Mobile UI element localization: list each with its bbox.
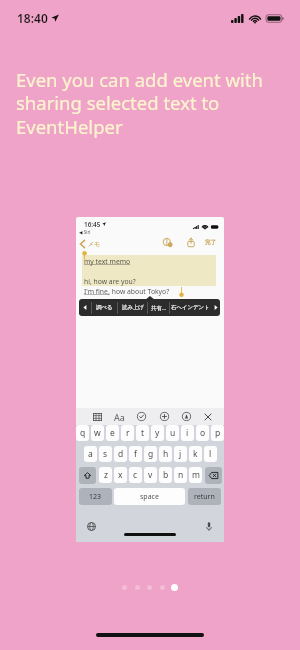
- button[interactable]: 右へインデント: [170, 299, 211, 316]
- button[interactable]: Text format: [113, 409, 125, 424]
- button[interactable]: k: [189, 446, 202, 462]
- staticText: r: [126, 427, 130, 439]
- button[interactable]: Insert table: [91, 409, 103, 424]
- button[interactable]: n: [174, 467, 187, 483]
- staticText: h: [163, 448, 169, 460]
- button[interactable]: 共有...: [148, 299, 169, 316]
- button[interactable]: Page 4 of 5: [160, 585, 165, 590]
- staticText: p: [215, 427, 221, 439]
- staticText: 共有...: [151, 304, 167, 311]
- button[interactable]: s: [99, 446, 112, 462]
- staticText: a: [88, 448, 93, 460]
- staticText: b: [163, 469, 169, 481]
- staticText: u: [170, 427, 176, 439]
- staticText: 右へインデント: [171, 304, 210, 311]
- button[interactable]: h: [159, 446, 172, 462]
- staticText: c: [133, 469, 138, 481]
- staticText: z: [104, 469, 108, 481]
- button[interactable]: j: [174, 446, 187, 462]
- staticText: 16:45: [84, 220, 101, 229]
- staticText: 調べる: [96, 304, 113, 311]
- staticText: my text memo: [84, 257, 131, 266]
- button[interactable]: o: [196, 425, 209, 441]
- staticText: how about Tokyo?: [110, 287, 170, 296]
- button[interactable]: v: [144, 467, 157, 483]
- button[interactable]: r: [121, 425, 134, 441]
- staticText: Aa: [114, 411, 125, 423]
- button[interactable]: i: [181, 425, 194, 441]
- button[interactable]: 調べる: [92, 299, 117, 316]
- button[interactable]: Page 5 of 5: [171, 584, 178, 591]
- staticText: m: [192, 469, 200, 481]
- button[interactable]: Page 1 of 5: [122, 585, 127, 590]
- staticText: k: [193, 448, 198, 460]
- staticText: i: [186, 427, 189, 439]
- staticText: 完了: [205, 239, 217, 246]
- button[interactable]: w: [91, 425, 104, 441]
- staticText: ◀ Siri: [79, 229, 91, 235]
- staticText: 123: [89, 492, 102, 502]
- staticText: l: [209, 448, 212, 460]
- staticText: Even you can add event with sharing sele…: [16, 67, 284, 140]
- staticText: n: [178, 469, 184, 481]
- button[interactable]: z: [99, 467, 112, 483]
- button[interactable]: q: [76, 425, 89, 441]
- button[interactable]: return: [188, 488, 221, 505]
- button[interactable]: g: [144, 446, 157, 462]
- button[interactable]: Dictation: [203, 520, 215, 532]
- staticText: j: [179, 448, 182, 460]
- staticText: 読み上げ: [122, 304, 144, 311]
- staticText: I'm fine,: [84, 287, 110, 296]
- staticText: f: [134, 448, 137, 460]
- staticText: o: [200, 427, 206, 439]
- button[interactable]: Page 3 of 5: [147, 585, 152, 590]
- button[interactable]: y: [151, 425, 164, 441]
- button[interactable]: f: [129, 446, 142, 462]
- button[interactable]: Page 2 of 5: [135, 585, 140, 590]
- staticText: return: [194, 492, 215, 502]
- button[interactable]: Attach: [158, 409, 170, 424]
- staticText: メモ: [88, 240, 101, 248]
- button[interactable]: d: [114, 446, 127, 462]
- button[interactable]: Checklist: [135, 409, 147, 424]
- button[interactable]: Next menu page: [211, 299, 220, 316]
- button[interactable]: x: [114, 467, 127, 483]
- button[interactable]: b: [159, 467, 172, 483]
- button[interactable]: 読み上げ: [118, 299, 147, 316]
- staticText: hi, how are you?: [84, 277, 136, 286]
- staticText: t: [141, 427, 145, 439]
- button[interactable]: Close keyboard: [202, 409, 214, 424]
- button[interactable]: t: [136, 425, 149, 441]
- button[interactable]: Change keyboard: [85, 520, 97, 532]
- button[interactable]: u: [166, 425, 179, 441]
- staticText: y: [155, 427, 160, 439]
- staticText: e: [110, 427, 115, 439]
- staticText: 18:40: [17, 10, 48, 26]
- button[interactable]: Share: [185, 236, 197, 249]
- staticText: s: [103, 448, 108, 460]
- staticText: q: [80, 427, 86, 439]
- button[interactable]: Backspace: [205, 467, 222, 484]
- button[interactable]: 完了: [204, 236, 217, 249]
- button[interactable]: p: [211, 425, 224, 441]
- button[interactable]: Previous menu page: [79, 299, 91, 316]
- staticText: g: [148, 448, 154, 460]
- staticText: x: [118, 469, 123, 481]
- button[interactable]: Shift: [79, 467, 96, 484]
- button[interactable]: m: [189, 467, 202, 483]
- staticText: v: [148, 469, 153, 481]
- button[interactable]: a: [84, 446, 97, 462]
- staticText: d: [118, 448, 124, 460]
- button[interactable]: l: [204, 446, 217, 462]
- staticText: w: [94, 427, 101, 439]
- button[interactable]: 123: [79, 488, 112, 505]
- button[interactable]: Markup: [180, 409, 192, 424]
- button[interactable]: space: [114, 488, 185, 505]
- button[interactable]: Collaborate: [161, 236, 175, 249]
- button[interactable]: c: [129, 467, 142, 483]
- button[interactable]: Back to memo list: [80, 237, 101, 251]
- staticText: space: [140, 492, 159, 502]
- button[interactable]: e: [106, 425, 119, 441]
